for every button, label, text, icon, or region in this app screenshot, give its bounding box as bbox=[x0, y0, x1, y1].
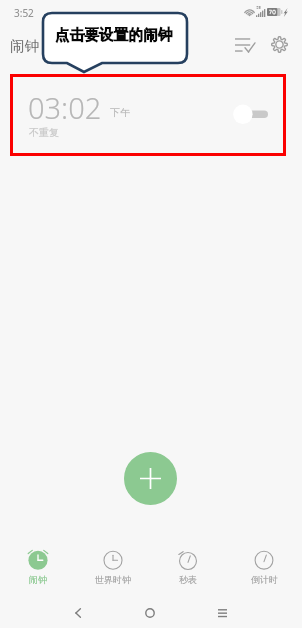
button[interactable]: Recents bbox=[200, 598, 244, 628]
staticText: 下午 bbox=[110, 106, 130, 119]
button[interactable]: Back bbox=[56, 598, 100, 628]
staticText: 不重复 bbox=[29, 126, 59, 139]
button[interactable]: Add alarm bbox=[124, 452, 177, 505]
staticText: 点击要设置的闹钟 bbox=[55, 26, 173, 45]
button[interactable]: Settings bbox=[261, 26, 297, 62]
button[interactable]: Sort alarms bbox=[227, 27, 263, 63]
button[interactable]: 03:02 bbox=[0, 74, 302, 156]
staticText: 世界时钟 bbox=[95, 574, 131, 585]
staticText: 闹钟 bbox=[29, 574, 47, 585]
staticText: 闹钟 bbox=[10, 37, 39, 55]
button[interactable]: Toggle alarm bbox=[231, 100, 271, 128]
staticText: 3:52 bbox=[14, 6, 34, 20]
button[interactable]: 秒表 bbox=[150, 550, 226, 594]
staticText: 倒计时 bbox=[251, 574, 278, 585]
button[interactable]: 世界时钟 bbox=[75, 550, 150, 594]
button[interactable]: Home bbox=[128, 598, 172, 628]
button[interactable]: 闹钟 bbox=[0, 550, 75, 594]
button[interactable]: 倒计时 bbox=[226, 550, 302, 594]
staticText: 秒表 bbox=[179, 574, 197, 585]
staticText: 03:02 bbox=[28, 88, 102, 127]
